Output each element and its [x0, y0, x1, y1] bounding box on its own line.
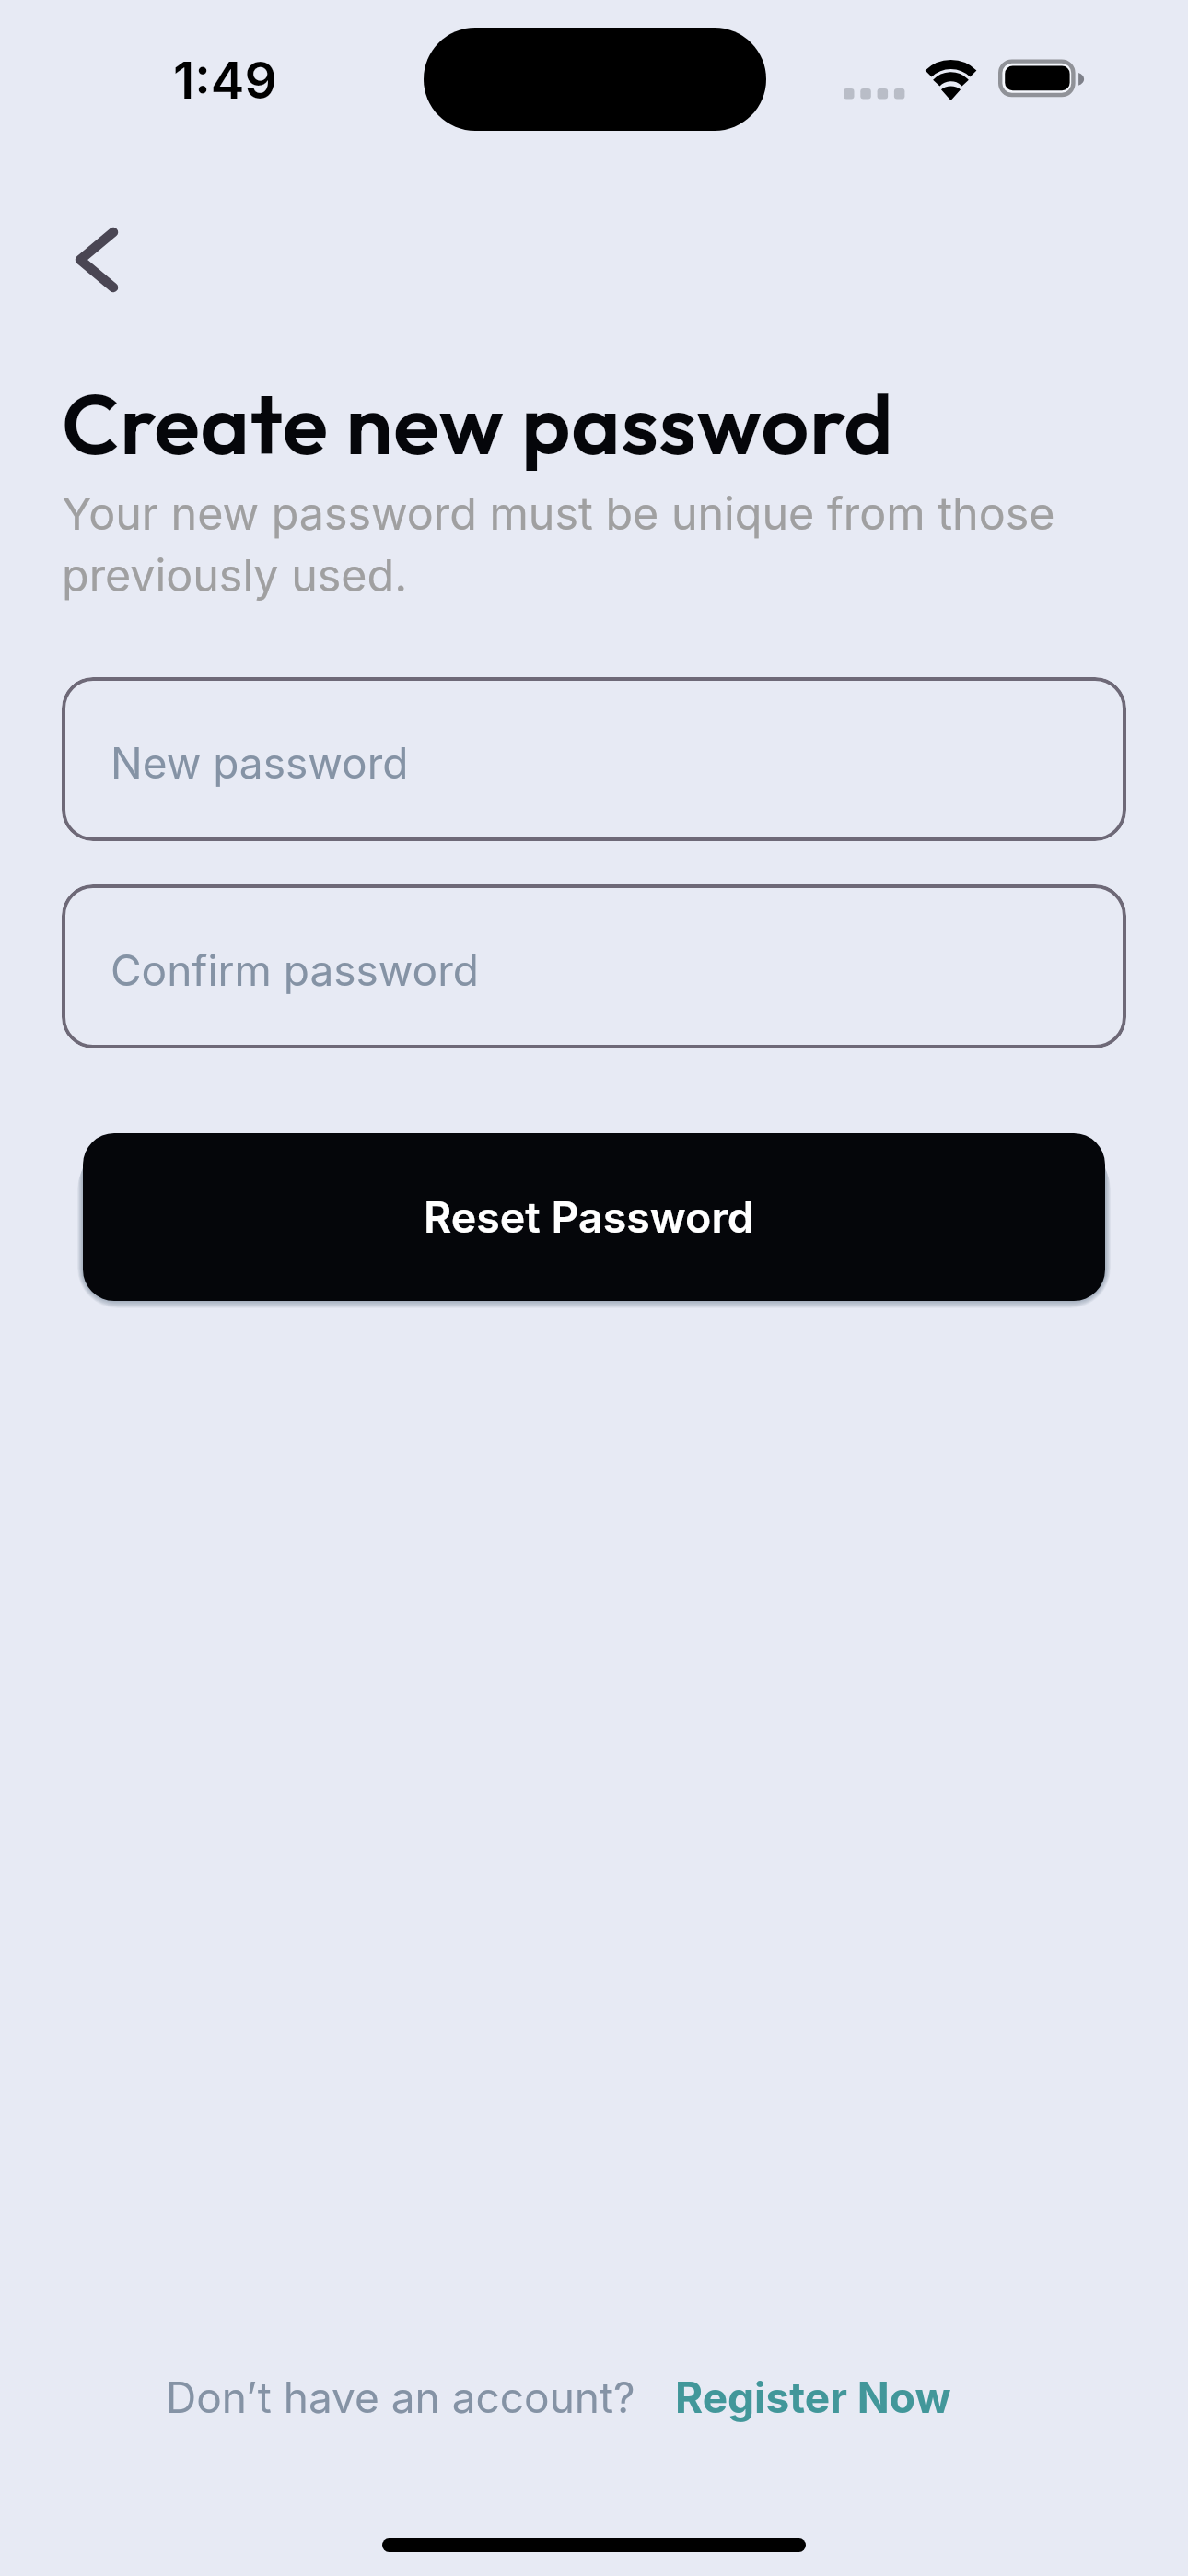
- staticText: Reset Password: [424, 1191, 754, 1243]
- staticText: 1:49: [173, 50, 277, 111]
- button[interactable]: New password: [62, 677, 1126, 841]
- button[interactable]: Reset Password: [83, 1133, 1105, 1301]
- staticText: New password: [111, 737, 409, 789]
- button[interactable]: Back: [39, 218, 122, 301]
- staticText: Don’t have an account?: [166, 2371, 635, 2423]
- staticText: Create new password: [62, 370, 894, 476]
- button[interactable]: Confirm password: [62, 884, 1126, 1048]
- staticText: Register Now: [675, 2371, 951, 2423]
- staticText: Your new password must be unique from th…: [62, 486, 1102, 602]
- staticText: Confirm password: [111, 944, 479, 996]
- button[interactable]: Register Now: [662, 2366, 964, 2429]
